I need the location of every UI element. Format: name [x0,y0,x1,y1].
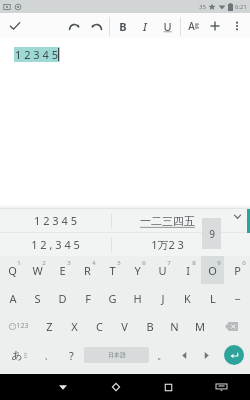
button[interactable]: Done [6,17,24,35]
button[interactable]: U [156,15,178,37]
button[interactable]: ? [60,340,82,370]
button[interactable]: Expand candidates [225,206,250,256]
staticText: 9 [209,227,215,241]
staticText: − [234,291,241,306]
staticText: W [32,263,43,278]
button[interactable]: Recents [142,374,195,400]
staticText: 。 [157,349,167,362]
button[interactable]: K [176,284,199,312]
staticText: P [234,263,241,278]
button[interactable]: Hide keyboard [195,374,248,400]
staticText: 1 2 3 4 5 [15,47,58,62]
button[interactable]: D [51,284,74,312]
staticText: N [170,319,179,334]
staticText: 9 [217,259,221,267]
button[interactable]: H [126,284,149,312]
staticText: O [208,263,217,278]
staticText: 4 [92,259,96,267]
button[interactable]: 1 2 3 4 5 [0,209,111,232]
staticText: 2 [42,259,46,267]
button[interactable]: J [151,284,174,312]
staticText: X [71,319,78,334]
button[interactable]: I [134,15,156,37]
button[interactable]: 一二三四五 [112,209,223,232]
button[interactable]: Move cursor left [173,340,195,370]
button[interactable]: O [201,256,224,284]
staticText: V [121,319,128,334]
button[interactable]: S [26,284,49,312]
button[interactable]: − [226,284,249,312]
staticText: あ [11,348,23,362]
staticText: 1 [17,259,21,267]
button[interactable]: More options [226,15,248,37]
button[interactable]: C [88,312,111,340]
button[interactable]: R [76,256,99,284]
staticText: G [108,291,117,306]
staticText: U [158,263,167,278]
button[interactable]: Move cursor right [195,340,217,370]
staticText: 、 [44,349,54,362]
button[interactable]: T [101,256,124,284]
staticText: 123 [16,321,29,331]
button[interactable]: Z [38,312,61,340]
staticText: 6:21 [235,3,247,11]
button[interactable]: Redo [85,15,107,37]
button[interactable]: Y [126,256,149,284]
button[interactable]: A [1,284,24,312]
button[interactable]: I [176,256,199,284]
button[interactable]: M [188,312,211,340]
staticText: 3 [67,259,71,267]
staticText: K [184,291,191,306]
staticText: B [119,19,127,34]
staticText: F [85,291,91,306]
staticText: D [58,291,67,306]
button[interactable]: Text formatting [182,15,204,37]
staticText: 6 [142,259,146,267]
staticText: I [186,263,190,278]
button[interactable]: Insert [204,15,226,37]
staticText: B [146,319,154,334]
button[interactable]: E [51,256,74,284]
button[interactable]: 。 [151,340,173,370]
staticText: H [133,291,142,306]
staticText: 0 [242,259,246,267]
button[interactable]: 9 [202,218,221,249]
button[interactable]: L [201,284,224,312]
button[interactable]: U [151,256,174,284]
staticText: J [161,291,165,306]
staticText: T [109,263,116,278]
button[interactable]: Q [1,256,24,284]
staticText: S [34,291,41,306]
staticText: R [84,263,91,278]
button[interactable]: Undo [63,15,85,37]
button[interactable]: W [26,256,49,284]
staticText: 1 2 , 3 4 5 [31,237,80,252]
button[interactable]: B [112,15,134,37]
button[interactable]: Back [37,374,89,400]
staticText: 35 [199,3,206,11]
button[interactable]: 1万2 3 [112,233,223,255]
button[interactable]: 日本語 [84,347,149,363]
button[interactable]: V [113,312,136,340]
button[interactable]: G [101,284,124,312]
staticText: 1万2 3 [151,237,184,252]
staticText: A [9,291,17,306]
button[interactable]: Home [89,374,142,400]
button[interactable]: N [163,312,186,340]
button[interactable]: Symbols and numbers [0,312,37,340]
button[interactable]: P [226,256,249,284]
button[interactable]: Backspace [212,312,250,340]
button[interactable]: Enter [224,345,244,365]
staticText: 1 2 3 4 5 [34,213,77,228]
staticText: I [143,19,147,34]
staticText: Y [134,263,141,278]
button[interactable]: Switch to kana [0,340,37,370]
staticText: A [188,19,195,33]
staticText: 一二三四五 [140,214,195,228]
button[interactable]: X [63,312,86,340]
staticText: L [210,291,216,306]
button[interactable]: 1 2 , 3 4 5 [0,233,111,255]
button[interactable]: B [138,312,161,340]
button[interactable]: F [76,284,99,312]
button[interactable]: 、 [37,340,60,370]
